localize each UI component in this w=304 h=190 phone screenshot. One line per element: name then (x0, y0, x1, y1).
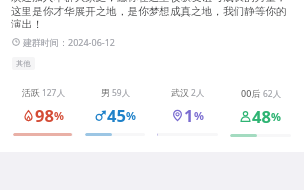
staticText: 1 (184, 104, 194, 126)
staticText: 武汉 (171, 87, 189, 98)
staticText: 00后 (241, 87, 261, 99)
staticText: 98 (35, 104, 54, 126)
staticText: % (194, 108, 204, 123)
staticText: 欢迎加入本群大家庭，愿你在这里收获友谊与成长的力量，这里是你才华展开之地，是你梦… (11, 0, 293, 28)
button[interactable]: 武汉 (151, 87, 224, 136)
button[interactable]: 活跃 (7, 87, 79, 136)
staticText: % (271, 109, 281, 124)
staticText: 其他 (16, 59, 31, 68)
staticText: 2人 (191, 87, 205, 98)
button[interactable]: 00后 (224, 87, 297, 137)
staticText: % (54, 108, 64, 123)
staticText: 62人 (263, 88, 281, 99)
staticText: 活跃 (22, 87, 40, 98)
staticText: 45 (107, 104, 126, 126)
staticText: 男 (101, 87, 110, 98)
staticText: % (126, 108, 136, 123)
staticText: 59人 (112, 87, 130, 98)
staticText: 建群时间：2024-06-12 (23, 36, 115, 48)
staticText: 48 (252, 105, 271, 127)
staticText: 127人 (42, 87, 65, 98)
button[interactable]: 男 (79, 87, 151, 136)
button[interactable]: 其他 (12, 57, 35, 70)
